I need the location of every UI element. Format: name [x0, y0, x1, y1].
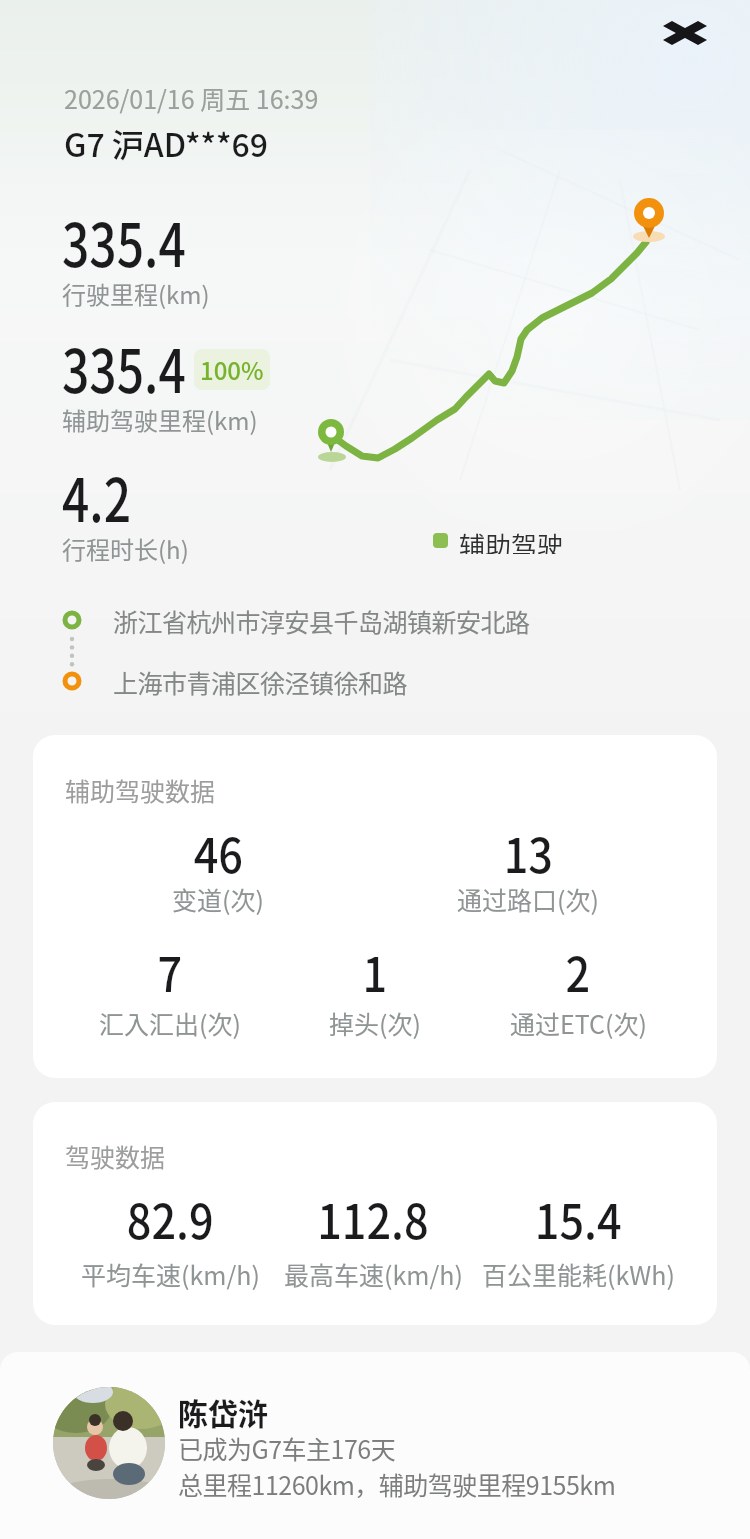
- staticText: 行程时长(h): [62, 531, 189, 566]
- staticText: 掉头(次): [329, 1005, 421, 1041]
- staticText: 2: [565, 936, 591, 1006]
- button[interactable]: [33, 1102, 717, 1325]
- staticText: 平均车速(km/h): [81, 1256, 260, 1292]
- staticText: 最高车速(km/h): [284, 1256, 463, 1292]
- staticText: 已成为G7车主176天: [178, 1430, 396, 1466]
- staticText: 通过ETC(次): [510, 1005, 647, 1041]
- staticText: 辅助驾驶数据: [65, 772, 216, 808]
- staticText: 辅助驾驶: [459, 526, 564, 554]
- staticText: 百公里能耗(kWh): [482, 1256, 675, 1292]
- staticText: 辅助驾驶里程(km): [62, 402, 258, 437]
- staticText: 变道(次): [172, 881, 264, 917]
- staticText: 行驶里程(km): [62, 276, 210, 311]
- staticText: 陈岱浒: [178, 1390, 268, 1433]
- staticText: 4.2: [62, 452, 132, 539]
- staticText: 100%: [200, 352, 264, 387]
- staticText: 驾驶数据: [65, 1138, 166, 1174]
- staticText: G7 沪AD***69: [64, 120, 268, 166]
- staticText: 335.4: [62, 197, 186, 284]
- staticText: 1: [362, 936, 388, 1006]
- staticText: 112.8: [317, 1183, 429, 1253]
- button[interactable]: [663, 21, 707, 45]
- staticText: 46: [194, 817, 243, 887]
- staticText: 13: [504, 817, 553, 887]
- staticText: 上海市青浦区徐泾镇徐和路: [113, 664, 408, 700]
- button[interactable]: [0, 1352, 750, 1539]
- staticText: 汇入汇出(次): [99, 1005, 241, 1041]
- staticText: 浙江省杭州市淳安县千岛湖镇新安北路: [113, 603, 530, 639]
- staticText: 总里程11260km，辅助驾驶里程9155km: [178, 1466, 616, 1502]
- staticText: 2026/01/16 周五 16:39: [64, 80, 319, 116]
- button[interactable]: 辅助驾驶: [433, 526, 564, 554]
- button[interactable]: [33, 735, 717, 1078]
- staticText: 7: [157, 936, 183, 1006]
- staticText: 通过路口(次): [457, 881, 599, 917]
- staticText: 82.9: [127, 1183, 214, 1253]
- staticText: 15.4: [535, 1183, 622, 1253]
- staticText: 335.4: [62, 323, 186, 410]
